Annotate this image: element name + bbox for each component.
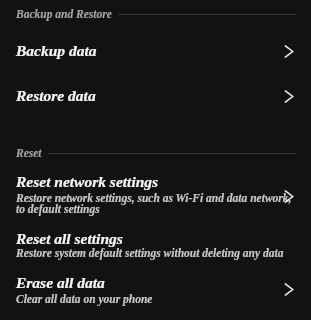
other: Restore data: [284, 90, 294, 103]
button[interactable]: Restore data: [0, 76, 311, 121]
staticText: Restore network settings, such as Wi-Fi …: [16, 192, 292, 215]
other: Erase all data: [284, 283, 294, 296]
staticText: Reset: [16, 147, 42, 160]
other: Reset network settings: [284, 190, 294, 203]
staticText: Reset all settings: [16, 230, 123, 247]
staticText: Backup data: [16, 42, 97, 59]
button[interactable]: Erase all data: [0, 269, 311, 314]
other: Backup data: [284, 45, 294, 58]
button[interactable]: Reset all settings: [0, 227, 311, 271]
staticText: Clear all data on your phone: [16, 293, 153, 306]
staticText: Erase all data: [16, 274, 105, 291]
button[interactable]: Reset network settings: [0, 170, 311, 227]
staticText: Reset network settings: [16, 173, 159, 190]
staticText: Backup and Restore: [16, 8, 112, 21]
staticText: Restore data: [16, 87, 96, 104]
staticText: Restore system default settings without …: [16, 247, 284, 260]
button[interactable]: Backup data: [0, 31, 311, 76]
